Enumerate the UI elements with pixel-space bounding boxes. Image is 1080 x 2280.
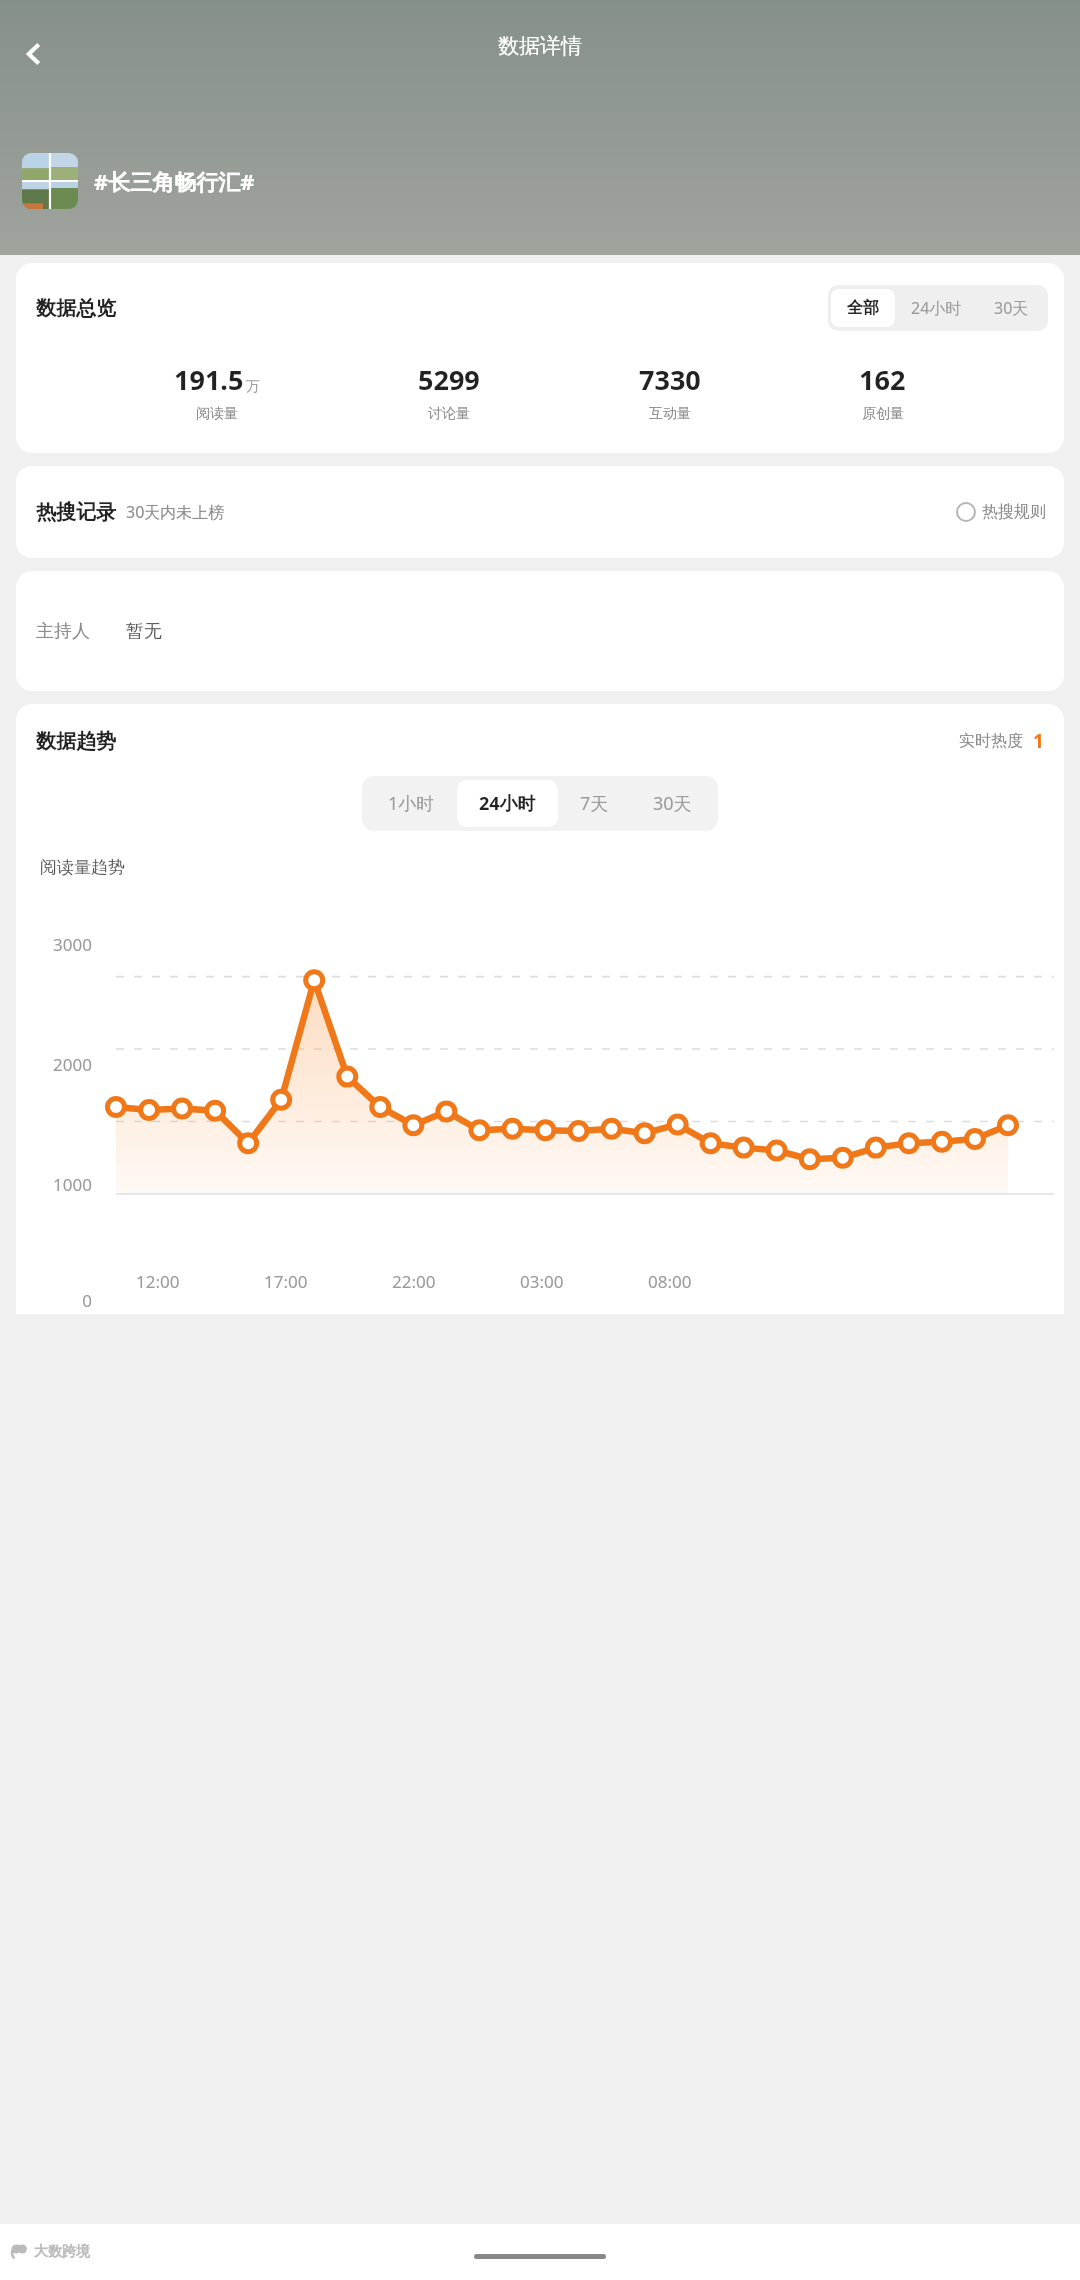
staticText: 3000 [34, 933, 92, 956]
staticText: 24小时 [479, 791, 536, 816]
staticText: 7330 [639, 361, 701, 398]
staticText: 03:00 [520, 1270, 564, 1293]
button[interactable]: 24小时 [895, 288, 978, 328]
staticText: 热搜规则 [982, 502, 1046, 522]
button[interactable]: 1小时 [366, 780, 457, 827]
staticText: 数据总览 [36, 296, 116, 321]
button[interactable] [22, 153, 78, 209]
button[interactable]: 30天 [631, 780, 714, 827]
staticText: 22:00 [392, 1270, 436, 1293]
staticText: 2000 [34, 1053, 92, 1076]
staticText: 1小时 [388, 791, 435, 816]
staticText: 暂无 [126, 620, 162, 643]
staticText: 12:00 [136, 1270, 180, 1293]
staticText: 0 [34, 1289, 92, 1312]
staticText: 互动量 [649, 405, 691, 423]
staticText: 万 [246, 378, 260, 396]
staticText: 5299 [418, 361, 480, 398]
staticText: 热搜记录 [36, 500, 116, 525]
staticText: #长三角畅行汇# [94, 166, 255, 196]
staticText: 实时热度 [959, 731, 1023, 751]
staticText: 讨论量 [428, 405, 470, 423]
staticText: 191.5 [174, 361, 244, 398]
staticText: 全部 [847, 298, 879, 318]
staticText: 24小时 [911, 297, 962, 319]
button[interactable]: 全部 [831, 289, 895, 327]
staticText: 大数跨境 [34, 2243, 90, 2261]
button[interactable]: Back [8, 28, 60, 80]
button[interactable]: 24小时 [457, 780, 558, 827]
staticText: 30天 [994, 297, 1029, 319]
staticText: 1000 [34, 1173, 92, 1196]
staticText: 数据趋势 [36, 729, 116, 754]
staticText: 162 [859, 361, 906, 398]
staticText: 数据详情 [498, 33, 582, 59]
button[interactable]: 7天 [558, 780, 631, 827]
staticText: 阅读量趋势 [40, 857, 125, 878]
staticText: 阅读量 [196, 405, 238, 423]
staticText: 30天 [653, 791, 692, 816]
staticText: 17:00 [264, 1270, 308, 1293]
staticText: 08:00 [648, 1270, 692, 1293]
staticText: 原创量 [862, 405, 904, 423]
staticText: 30天内未上榜 [126, 501, 225, 523]
staticText: 7天 [580, 791, 609, 816]
staticText: 1 [1033, 728, 1044, 754]
button[interactable]: 30天 [978, 288, 1045, 328]
staticText: 主持人 [36, 620, 90, 643]
button[interactable]: 热搜规则 [956, 502, 1046, 522]
